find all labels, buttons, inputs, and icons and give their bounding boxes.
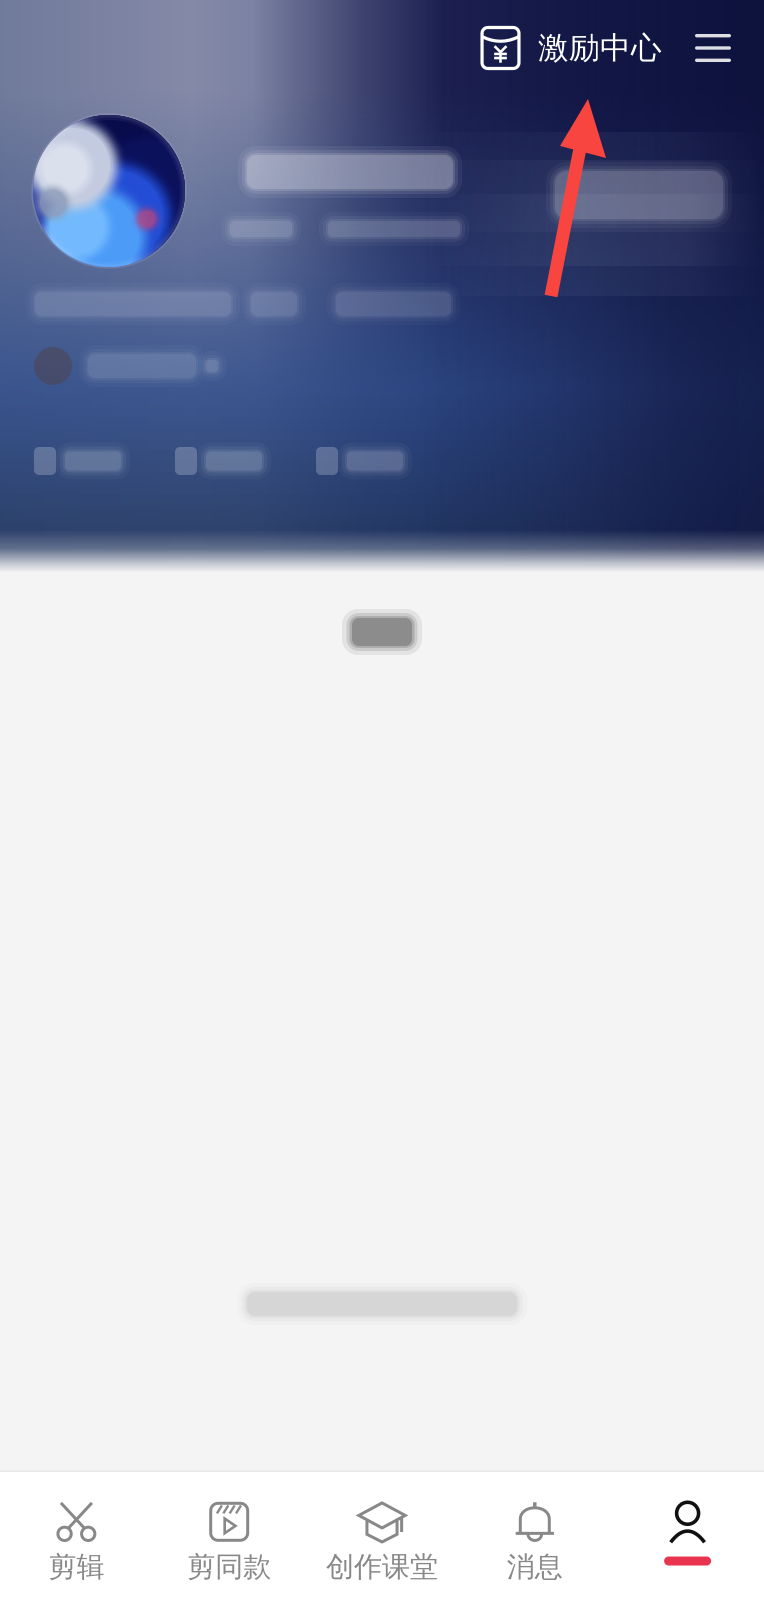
button[interactable]: 剪辑: [0, 1500, 153, 1586]
staticText: 激励中心: [538, 29, 662, 67]
button[interactable]: [175, 447, 262, 475]
button[interactable]: 消息: [458, 1500, 611, 1586]
staticText: 剪同款: [187, 1550, 271, 1584]
button[interactable]: [34, 447, 121, 475]
button[interactable]: 激励中心: [480, 27, 662, 68]
button[interactable]: [316, 447, 403, 475]
button[interactable]: 创作课堂: [306, 1500, 458, 1586]
button[interactable]: Menu: [695, 34, 731, 62]
staticText: 消息: [507, 1550, 563, 1584]
button[interactable]: [611, 1500, 764, 1585]
staticText: 创作课堂: [326, 1550, 438, 1584]
staticText: 剪辑: [48, 1550, 104, 1584]
button[interactable]: 剪同款: [153, 1500, 306, 1586]
